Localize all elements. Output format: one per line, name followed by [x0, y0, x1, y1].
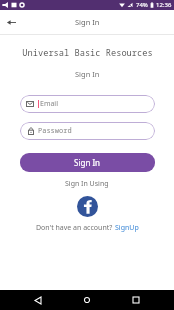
staticText: Password [38, 126, 72, 136]
button[interactable]: Back [30, 292, 46, 308]
staticText: 74% [136, 1, 148, 9]
button[interactable]: Password [20, 122, 155, 140]
staticText: Sign In [75, 17, 100, 27]
staticText: Sign In [75, 69, 100, 79]
button[interactable]: Home [79, 292, 95, 308]
staticText: Email [40, 99, 58, 109]
staticText: Sign In Using [65, 179, 109, 189]
button[interactable]: Sign in with Facebook [77, 196, 98, 217]
staticText: Don't have an account? [36, 223, 115, 233]
staticText: Universal Basic Resources [22, 47, 153, 59]
button[interactable]: SignUp [115, 223, 139, 233]
staticText: Sign In [74, 157, 101, 168]
staticText: SignUp [115, 223, 139, 233]
staticText: 12:36 [156, 1, 172, 9]
button[interactable]: Email [20, 95, 155, 113]
button[interactable]: Back [2, 13, 20, 31]
button[interactable]: Sign In [20, 153, 155, 172]
button[interactable]: Recent apps [128, 292, 144, 308]
